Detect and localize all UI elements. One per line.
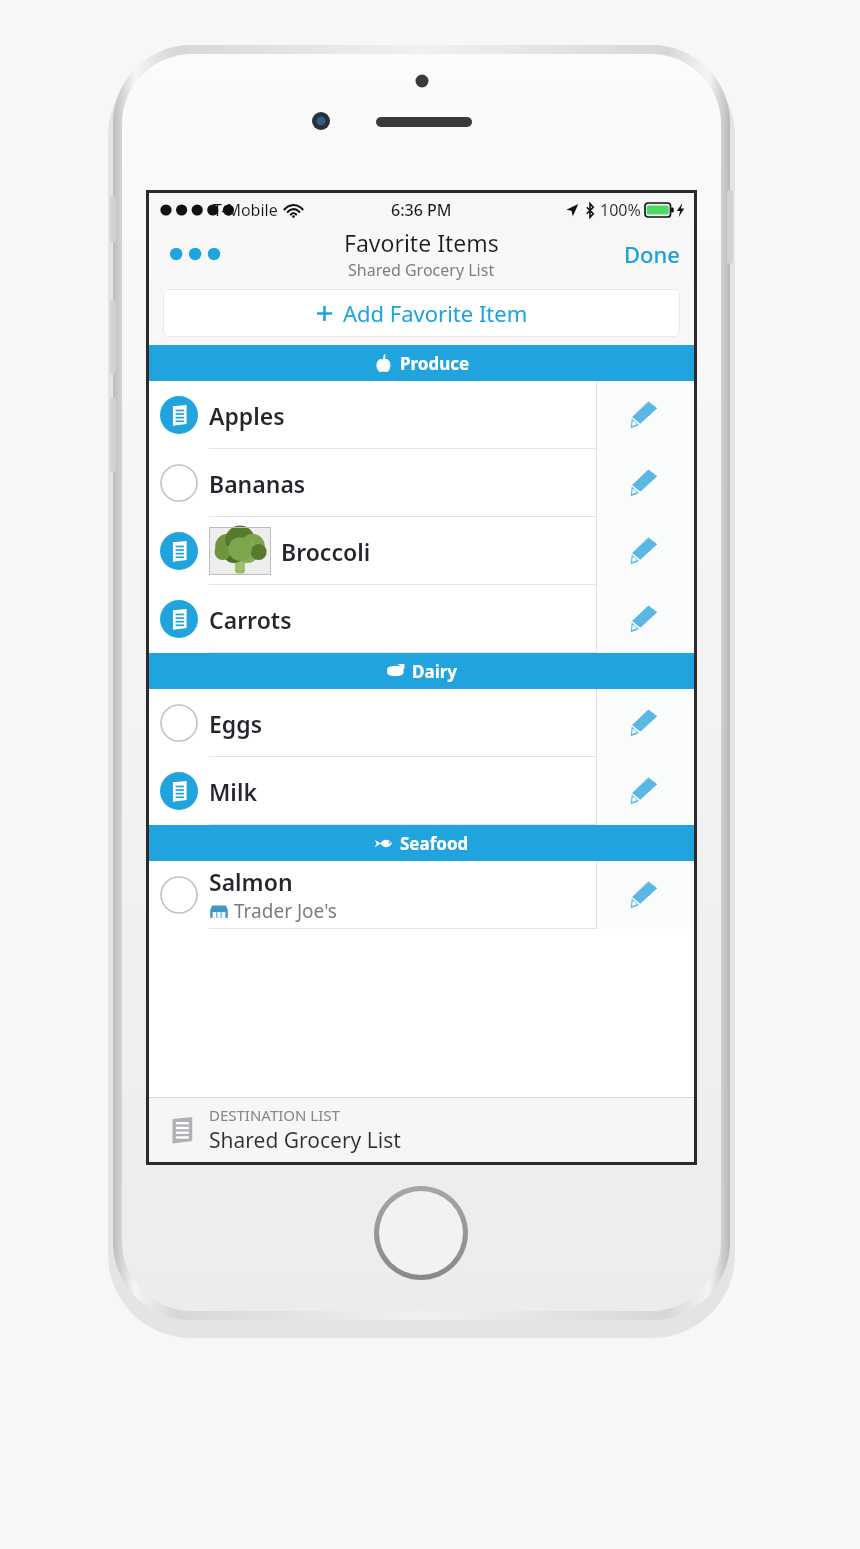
staticText: Carrots [209, 604, 292, 635]
staticText: Dairy [412, 660, 458, 683]
staticText: Trader Joe's [234, 898, 337, 924]
staticText: Favorite Items [344, 227, 499, 258]
button[interactable]: Apples [149, 381, 694, 449]
staticText: Bananas [209, 468, 306, 499]
staticText: DESTINATION LIST [209, 1105, 340, 1125]
staticText: Done [624, 239, 680, 269]
button[interactable]: Milk [149, 757, 694, 825]
staticText: Apples [209, 400, 285, 431]
staticText: Broccoli [281, 536, 371, 567]
staticText: Shared Grocery List [348, 259, 495, 281]
button[interactable]: Salmon [149, 861, 694, 929]
button[interactable]: Done [624, 239, 680, 269]
button[interactable]: Broccoli [149, 517, 694, 585]
button[interactable]: Edit Carrots [596, 585, 694, 653]
staticText: T-Mobile [213, 199, 278, 221]
staticText: Salmon [209, 866, 293, 897]
button[interactable]: Edit Milk [596, 757, 694, 825]
button[interactable]: Edit Broccoli [596, 517, 694, 585]
button[interactable]: Bananas [149, 449, 694, 517]
button[interactable]: Edit Eggs [596, 689, 694, 757]
staticText: Seafood [400, 832, 469, 855]
button[interactable]: Edit Salmon [596, 861, 694, 929]
staticText: 6:36 PM [391, 199, 452, 221]
button[interactable]: More options [165, 234, 219, 274]
staticText: Add Favorite Item [343, 298, 528, 328]
button[interactable]: Add Favorite Item [163, 289, 680, 337]
button[interactable]: DESTINATION LIST [149, 1098, 694, 1162]
button[interactable]: Edit Apples [596, 381, 694, 449]
staticText: Milk [209, 776, 257, 807]
staticText: Shared Grocery List [209, 1126, 401, 1155]
staticText: Produce [400, 352, 470, 375]
button[interactable]: Edit Bananas [596, 449, 694, 517]
staticText: Eggs [209, 708, 262, 739]
button[interactable]: Eggs [149, 689, 694, 757]
staticText: 100% [600, 199, 641, 221]
button[interactable]: Carrots [149, 585, 694, 653]
